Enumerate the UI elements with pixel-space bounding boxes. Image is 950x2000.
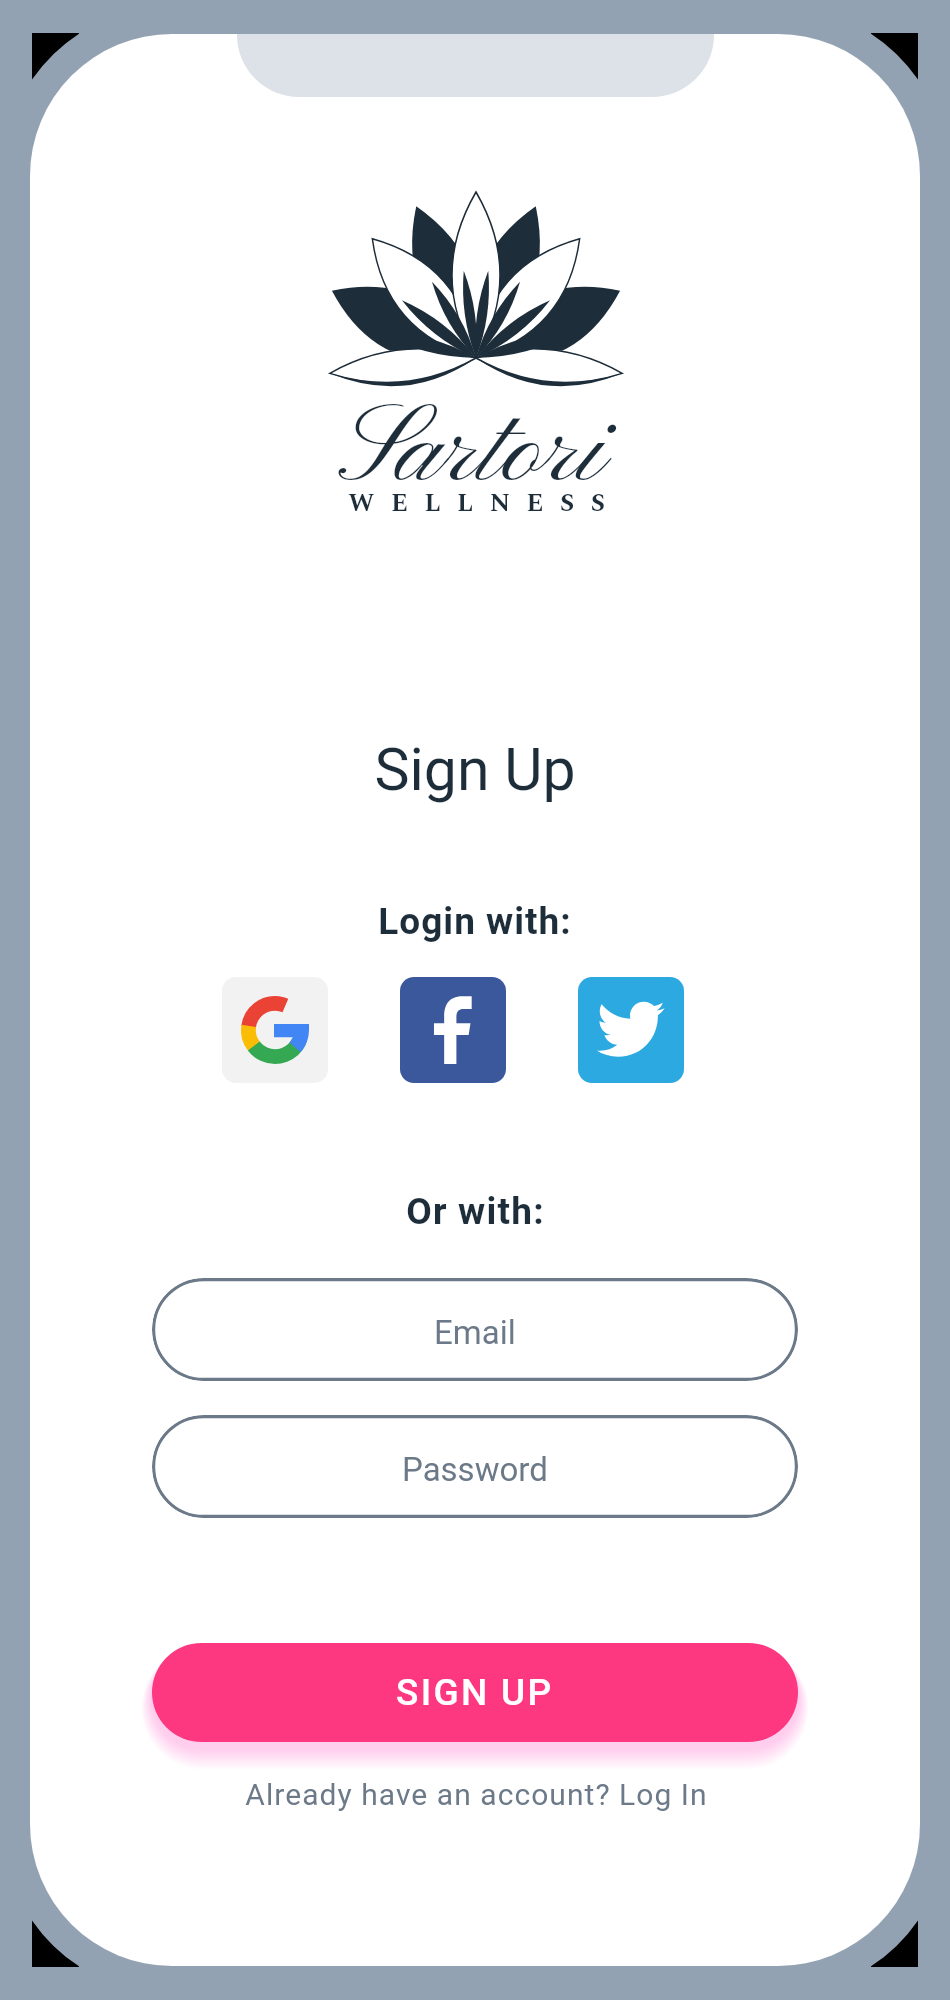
button[interactable]: Sign up with Google — [222, 977, 328, 1083]
staticText: SIGN UP — [396, 1671, 554, 1714]
staticText: Login with: — [378, 900, 572, 943]
staticText: Sartori — [338, 384, 605, 522]
staticText: Sign Up — [374, 735, 576, 804]
staticText: Already have an account? Log In — [245, 1777, 708, 1812]
button[interactable]: SIGN UP — [152, 1643, 798, 1742]
staticText: Password — [402, 1450, 548, 1489]
button[interactable]: Already have an account? Log In — [31, 1777, 920, 1966]
staticText: WELLNESS — [348, 485, 622, 523]
staticText: Or with: — [406, 1190, 545, 1233]
button[interactable]: Sign up with Facebook — [400, 977, 506, 1083]
staticText: Email — [434, 1313, 516, 1352]
button[interactable]: Email — [152, 1278, 798, 1381]
button[interactable]: Password — [152, 1415, 798, 1518]
button[interactable]: Sign up with Twitter — [578, 977, 684, 1083]
